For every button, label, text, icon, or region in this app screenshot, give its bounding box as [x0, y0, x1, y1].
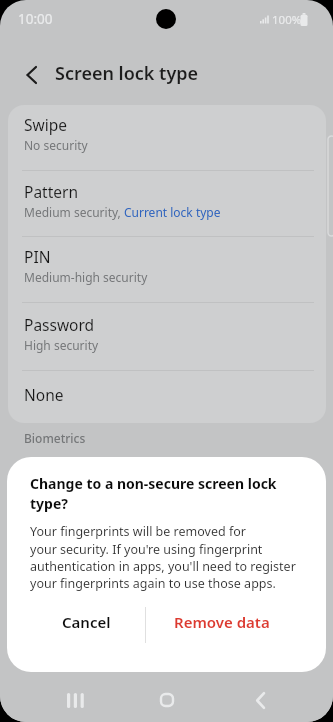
staticText: Biometrics — [24, 430, 86, 446]
staticText: 10:00 — [18, 10, 53, 28]
staticText: 100% — [272, 12, 302, 28]
button[interactable] — [55, 684, 95, 716]
staticText: Cancel — [62, 612, 111, 632]
staticText: No security — [24, 137, 88, 153]
button[interactable]: PIN — [8, 237, 326, 302]
staticText: Screen lock type — [55, 61, 199, 86]
button[interactable] — [240, 684, 280, 716]
staticText: Swipe — [24, 114, 67, 135]
staticText: PIN — [24, 246, 51, 267]
button[interactable]: Remove data — [162, 593, 282, 651]
button[interactable]: Cancel — [32, 593, 141, 651]
button[interactable]: Pattern — [8, 171, 326, 236]
staticText: Your fingerprints will be removed for yo… — [30, 523, 296, 591]
staticText: High security — [24, 337, 99, 353]
staticText: Remove data — [174, 612, 270, 632]
staticText: Medium security, Current lock type — [24, 204, 221, 220]
staticText: Medium-high security — [24, 269, 148, 285]
staticText: None — [24, 384, 64, 405]
button[interactable]: None — [8, 371, 326, 423]
staticText: Pattern — [24, 181, 78, 202]
button[interactable] — [147, 684, 187, 716]
button[interactable]: Swipe — [8, 105, 326, 170]
button[interactable] — [14, 58, 48, 92]
staticText: Password — [24, 314, 95, 335]
staticText: Change to a non-secure screen lock type? — [30, 474, 277, 513]
button[interactable]: Password — [8, 303, 326, 370]
